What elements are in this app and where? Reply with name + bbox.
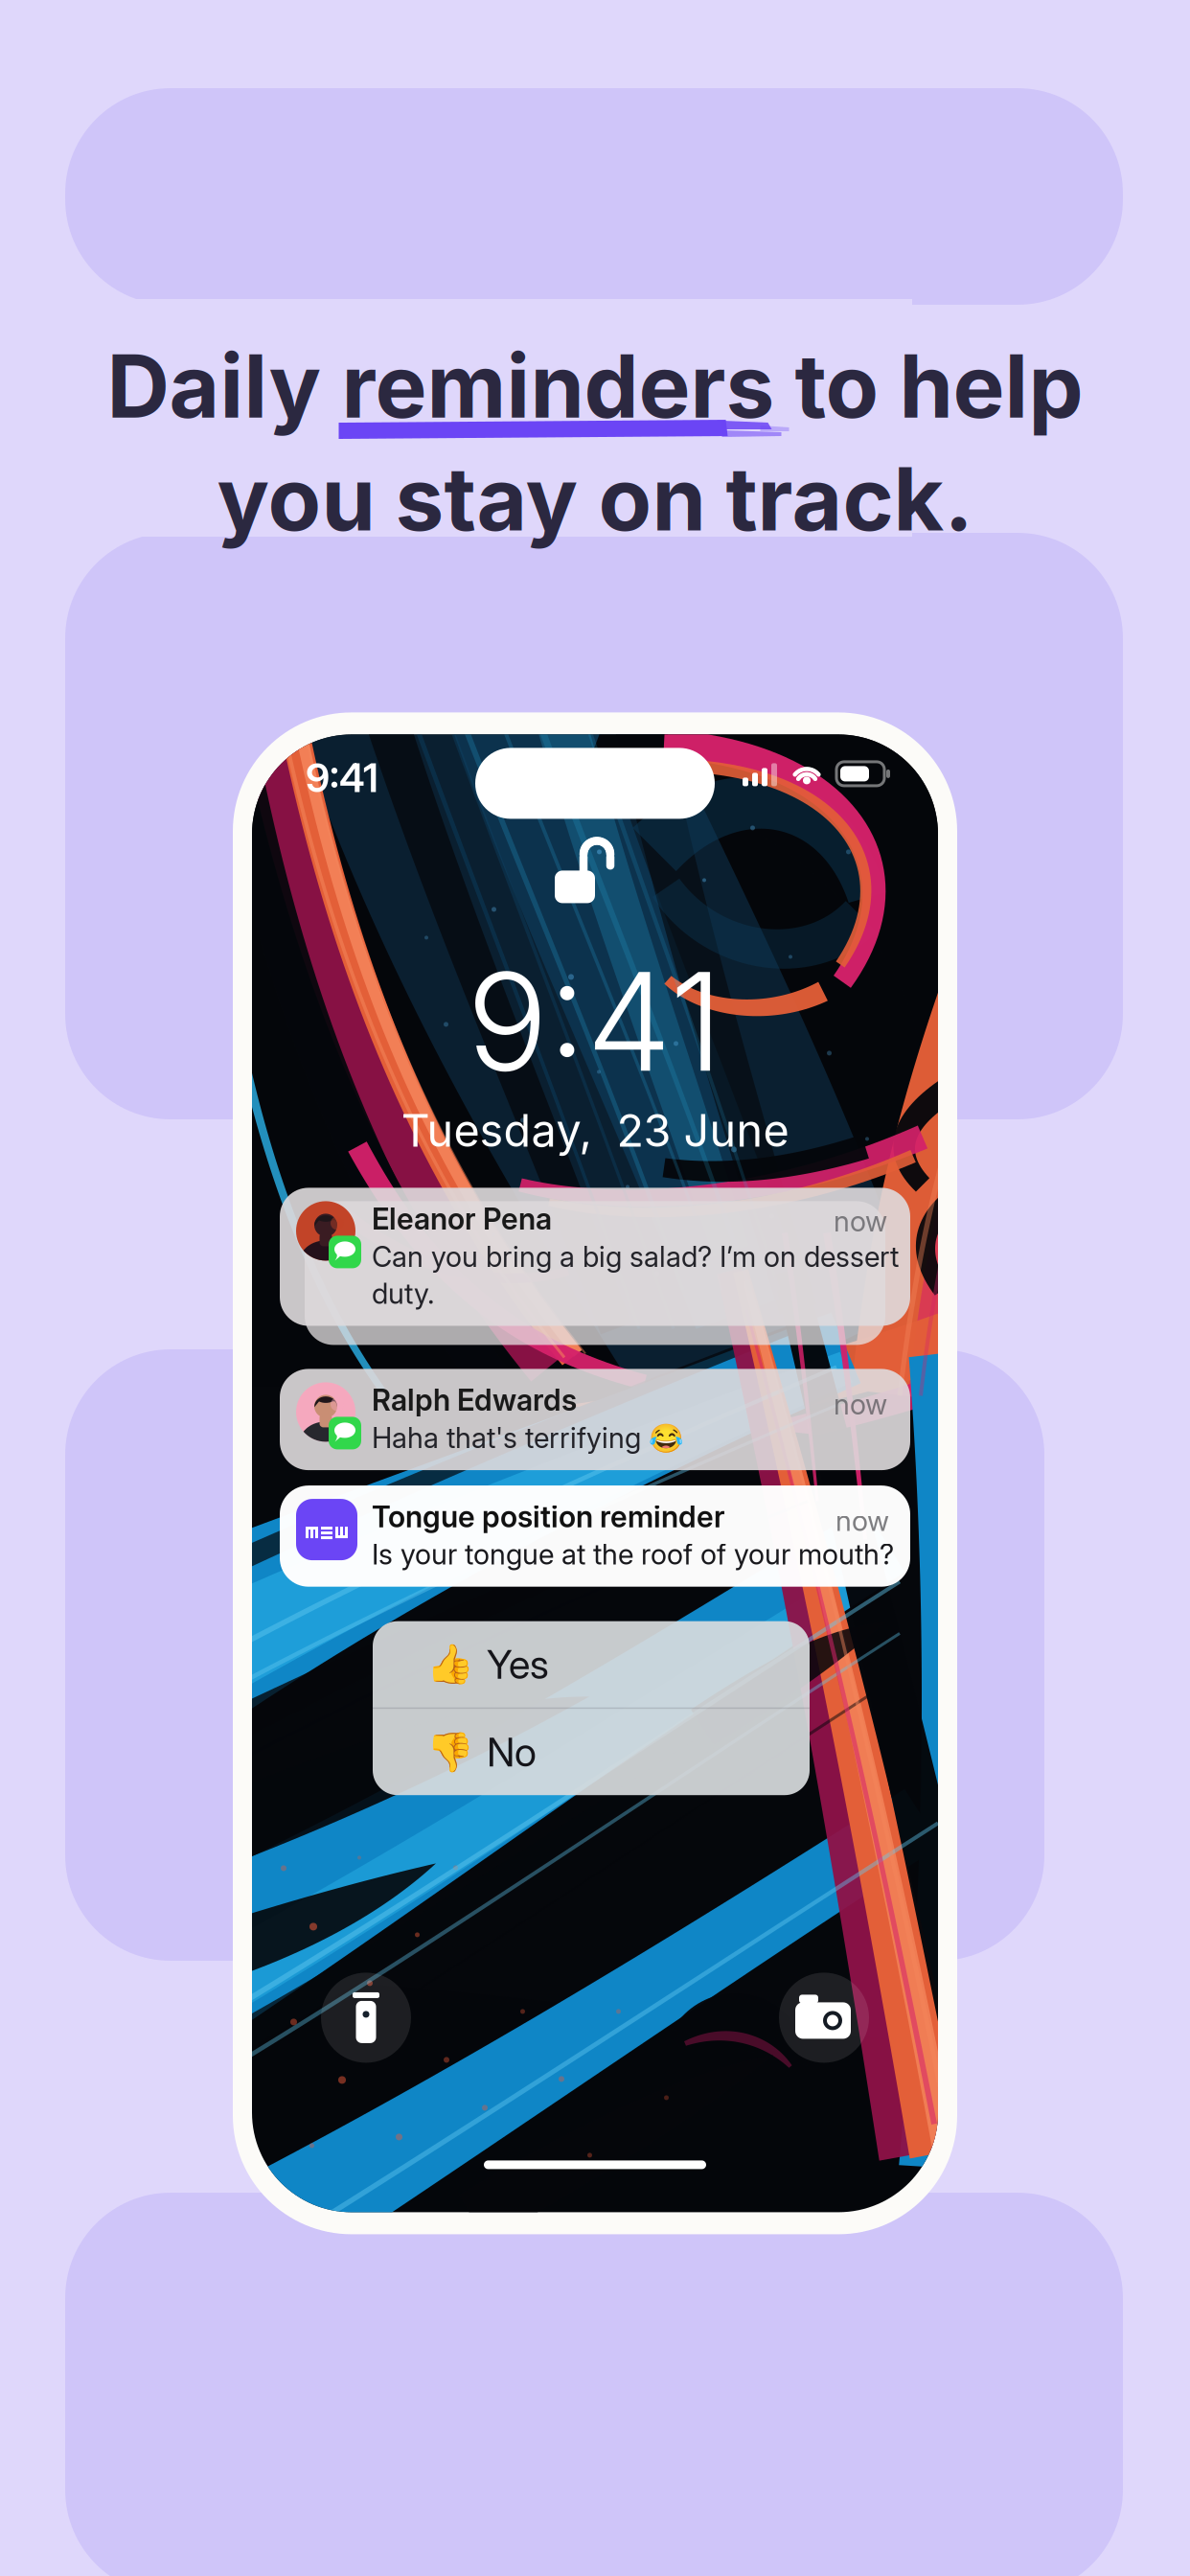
staticText: 9:41 (306, 754, 378, 802)
staticText: Yes (487, 1640, 549, 1688)
staticText: Can you bring a big salad? I’m on desser… (372, 1240, 899, 1274)
staticText: you stay on track. (217, 446, 973, 551)
staticText: now (834, 1387, 887, 1421)
staticText: now (834, 1204, 887, 1238)
button[interactable]: Ralph Edwards (280, 1369, 910, 1470)
button[interactable]: 👍 (373, 1621, 810, 1707)
staticText: Daily reminders to help (107, 333, 1083, 439)
staticText: duty. (372, 1276, 435, 1311)
button[interactable]: Eleanor Pena (280, 1188, 910, 1326)
staticText: Is your tongue at the roof of your mouth… (372, 1537, 894, 1571)
staticText: Tuesday, 23 June (401, 1103, 789, 1158)
button[interactable]: Camera (779, 1973, 869, 2063)
staticText: now (835, 1504, 889, 1538)
staticText: 9:41 (467, 940, 723, 1103)
button[interactable]: Tongue position reminder (280, 1486, 910, 1587)
button[interactable]: 👎 (373, 1709, 810, 1795)
staticText: 👍 (426, 1642, 474, 1687)
staticText: Eleanor Pena (372, 1201, 552, 1237)
staticText: Haha that's terrifying 😂 (372, 1421, 684, 1455)
staticText: Tongue position reminder (372, 1499, 725, 1534)
staticText: Ralph Edwards (372, 1382, 577, 1418)
staticText: 👎 (426, 1730, 474, 1775)
staticText: No (487, 1728, 537, 1776)
button[interactable]: Flashlight (321, 1973, 411, 2063)
